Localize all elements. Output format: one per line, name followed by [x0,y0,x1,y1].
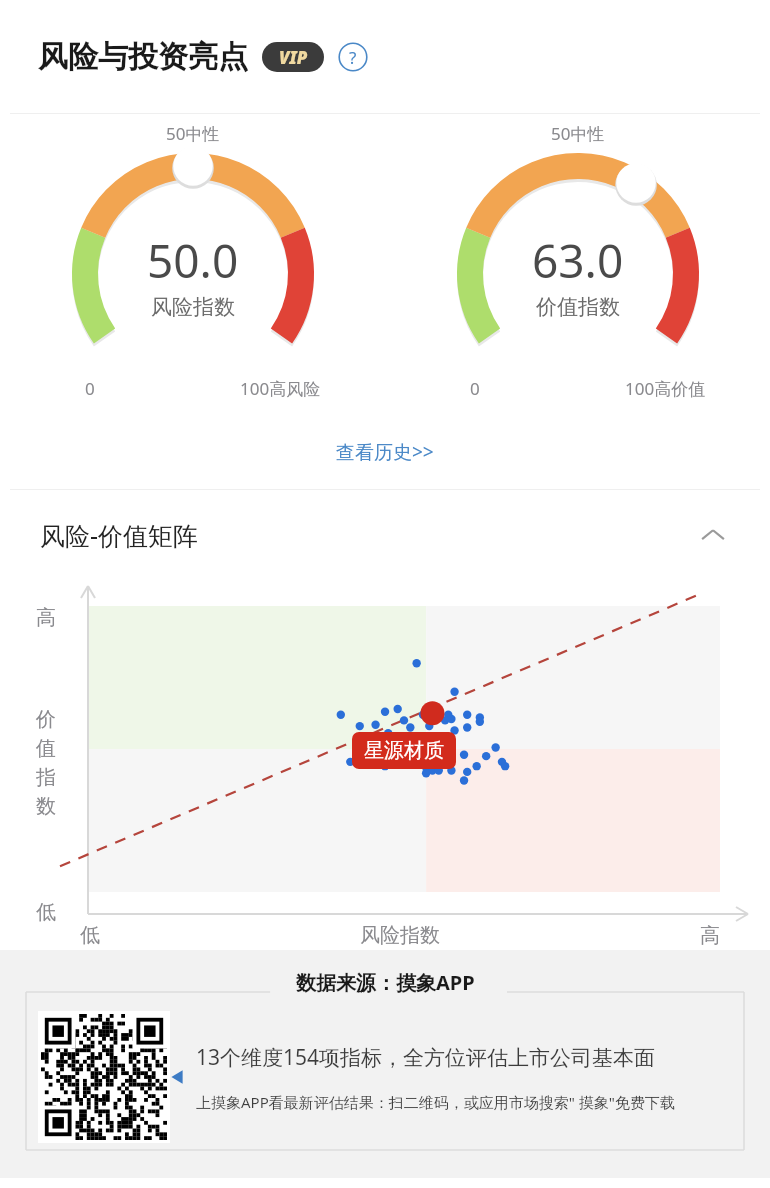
staticText: 50.0 [147,229,239,292]
staticText: 指 [36,765,56,790]
staticText: 数 [36,794,56,819]
staticText: 低 [36,900,56,925]
staticText: 高 [36,605,56,630]
staticText: 低 [80,923,100,948]
staticText: 高 [700,923,720,948]
staticText: ? [349,46,357,69]
staticText: 100高价值 [625,377,706,400]
staticText: 星源材质 [364,738,444,763]
staticText: VIP [279,46,308,69]
button[interactable]: 风险-价值矩阵 [0,490,770,580]
staticText: 0 [470,377,480,400]
staticText: 数据来源：摸象APP [296,969,475,996]
staticText: 价值指数 [536,294,620,320]
button[interactable]: 50中性 [428,114,728,414]
staticText: 风险指数 [151,294,235,320]
staticText: 上摸象APP看最新评估结果：扫二维码，或应用市场搜索" 摸象"免费下载 [196,1092,675,1112]
staticText: 50中性 [166,122,220,145]
button[interactable]: 查看历史>> [326,429,444,475]
staticText: 风险-价值矩阵 [40,518,199,552]
staticText: 50中性 [551,122,605,145]
staticText: 13个维度154项指标，全方位评估上市公司基本面 [196,1043,656,1072]
staticText: 0 [85,377,95,400]
button[interactable]: 帮助 [338,42,368,72]
button[interactable]: VIP [262,42,324,72]
staticText: 63.0 [532,229,624,292]
button[interactable]: 星源材质 [352,732,456,769]
staticText: 100高风险 [240,377,321,400]
staticText: 风险与投资亮点 [38,38,248,76]
staticText: 价 [36,707,56,732]
button[interactable]: 50中性 [43,114,343,414]
other: 收起 [696,518,730,552]
staticText: 值 [36,736,56,761]
staticText: 查看历史>> [336,439,434,465]
staticText: 风险指数 [360,923,440,948]
